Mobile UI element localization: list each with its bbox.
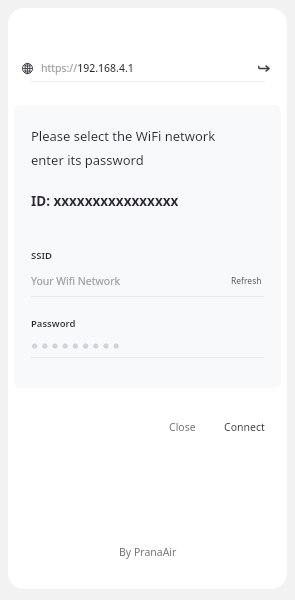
- staticText: SSID: [31, 249, 52, 262]
- other: Site information: [22, 63, 33, 74]
- staticText: Close: [169, 420, 196, 434]
- staticText: Your Wifi Network: [31, 274, 121, 288]
- button[interactable]: Go: [255, 59, 273, 77]
- staticText: Connect: [224, 420, 265, 434]
- staticText: Please select the WiFi network: [31, 127, 216, 145]
- staticText: Password: [31, 317, 76, 330]
- staticText: https://192.168.4.1: [41, 61, 134, 75]
- button[interactable]: Connect: [218, 414, 271, 440]
- button[interactable]: [31, 341, 264, 351]
- button[interactable]: Refresh: [229, 273, 264, 289]
- staticText: Refresh: [231, 275, 262, 287]
- staticText: ID: xxxxxxxxxxxxxxxx: [31, 192, 179, 210]
- button[interactable]: Site information: [22, 55, 273, 81]
- button[interactable]: Close: [161, 414, 204, 440]
- staticText: enter its password: [31, 151, 144, 169]
- staticText: By PranaAir: [119, 545, 177, 559]
